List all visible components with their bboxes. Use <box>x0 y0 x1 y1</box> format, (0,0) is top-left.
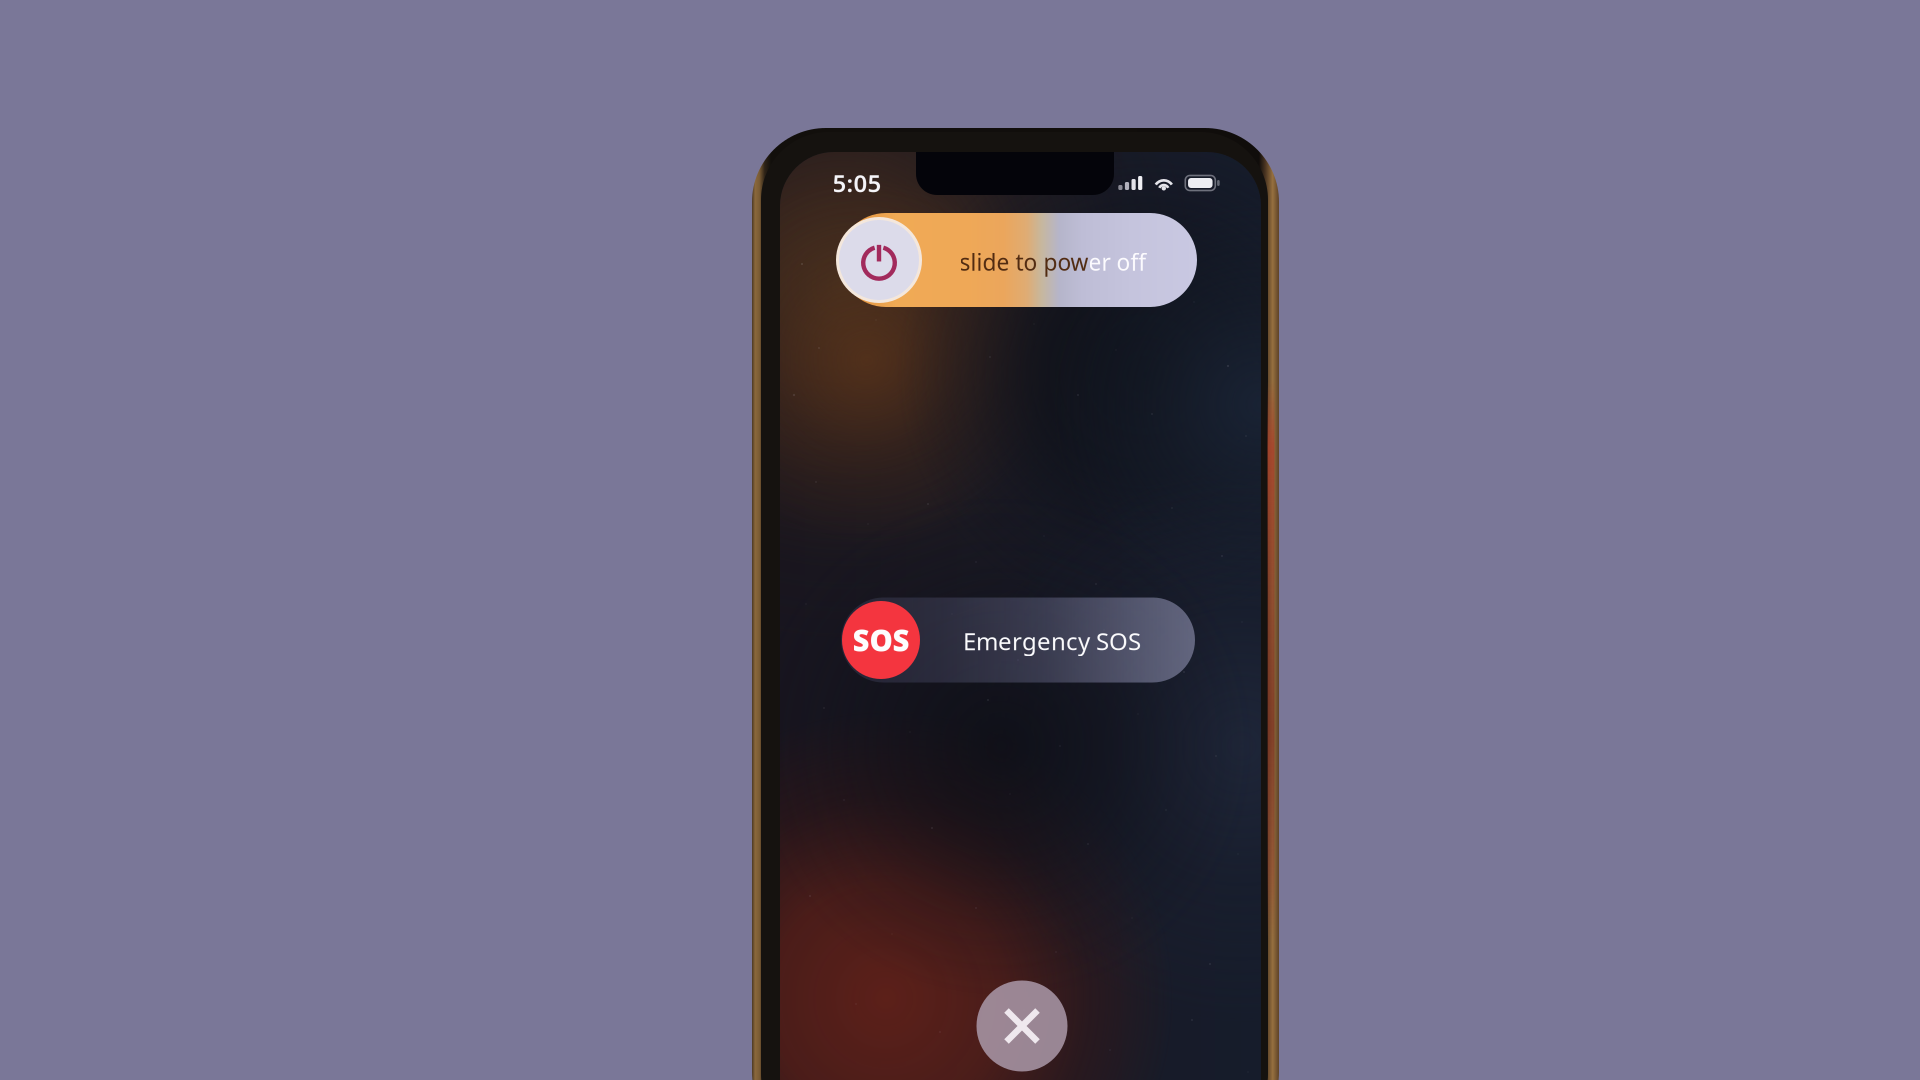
staticText: Emergency SOS <box>963 625 1141 657</box>
staticText: 5:05 <box>832 167 881 199</box>
button[interactable]: slide to pow <box>839 213 1197 307</box>
button[interactable]: Emergency SOS <box>841 597 1195 682</box>
staticText: slide to pow <box>959 247 1088 277</box>
staticText: SOS <box>852 620 909 659</box>
button[interactable]: Cancel <box>976 980 1067 1071</box>
staticText: er off <box>1088 247 1146 277</box>
